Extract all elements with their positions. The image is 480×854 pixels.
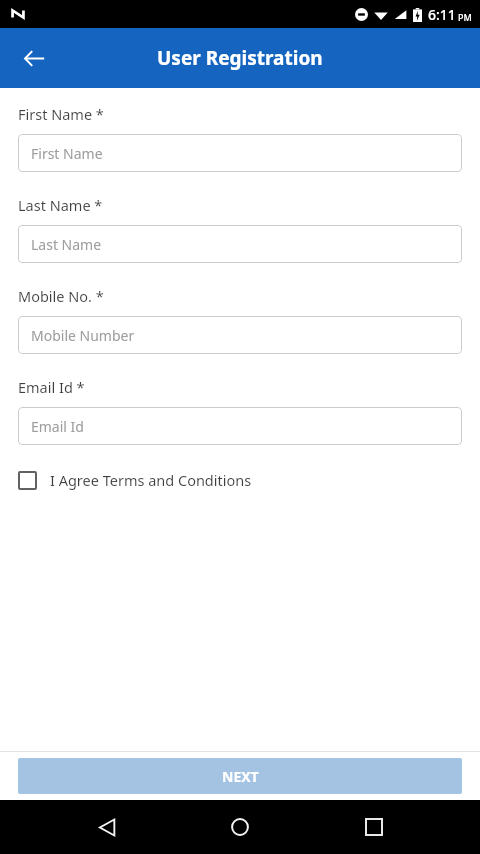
staticText: 6:11 [428, 5, 456, 24]
staticText: Mobile No. * [18, 286, 104, 306]
staticText: Mobile Number [31, 326, 135, 345]
staticText: NEXT [222, 767, 259, 786]
staticText: First Name [31, 144, 103, 163]
staticText: Email Id [31, 417, 84, 436]
button[interactable]: Back [10, 34, 58, 82]
button[interactable]: Home [213, 800, 267, 854]
staticText: Last Name * [18, 195, 103, 215]
staticText: User Registration [157, 45, 323, 71]
staticText: Last Name [31, 235, 102, 254]
button[interactable]: Email Id [18, 407, 462, 445]
staticText: I Agree Terms and Conditions [50, 470, 252, 490]
button[interactable]: I Agree Terms and Conditions [18, 470, 252, 490]
staticText: First Name * [18, 104, 104, 124]
button[interactable]: Mobile Number [18, 316, 462, 354]
staticText: PM [458, 11, 472, 23]
button[interactable]: Recent apps [347, 800, 401, 854]
staticText: Email Id * [18, 377, 85, 397]
button[interactable]: First Name [18, 134, 462, 172]
button[interactable]: NEXT [18, 758, 462, 794]
button[interactable]: Last Name [18, 225, 462, 263]
button[interactable]: Back [80, 800, 134, 854]
